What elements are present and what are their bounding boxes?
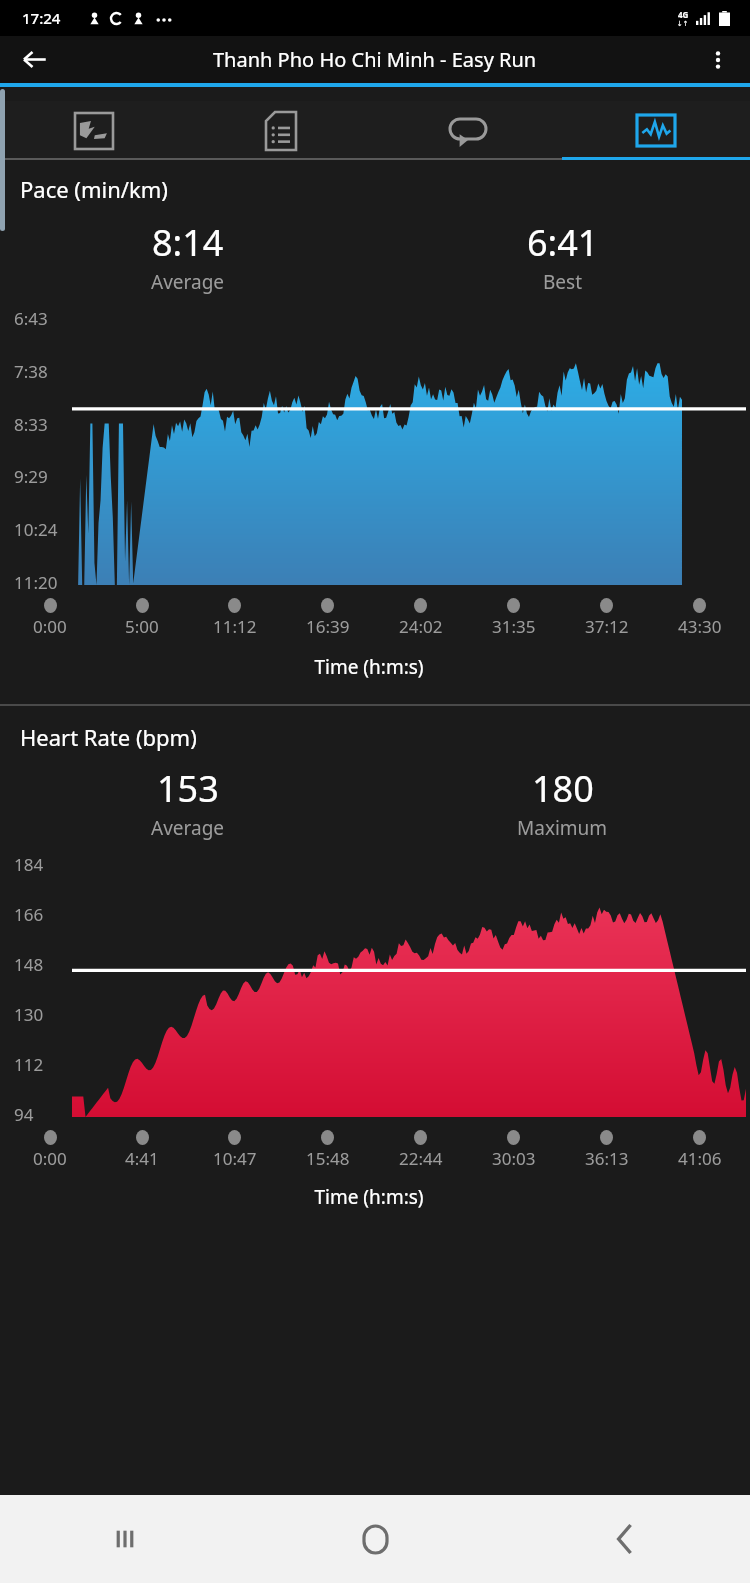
staticText: 10:47 <box>213 1147 257 1170</box>
staticText: Maximum <box>517 815 608 841</box>
staticText: 94 <box>14 1103 34 1126</box>
staticText: 36:13 <box>585 1147 629 1170</box>
staticText: 166 <box>14 903 44 926</box>
staticText: 30:03 <box>492 1147 536 1170</box>
staticText: 24:02 <box>399 615 443 638</box>
staticText: 16:39 <box>306 615 350 638</box>
staticText: 15:48 <box>306 1147 350 1170</box>
staticText: 43:30 <box>678 615 722 638</box>
staticText: 8:14 <box>152 218 224 267</box>
staticText: 4G <box>678 9 689 20</box>
staticText: Pace (min/km) <box>20 174 168 204</box>
button[interactable]: Recent apps <box>0 1495 250 1583</box>
staticText: Best <box>543 269 583 295</box>
staticText: Average <box>151 815 225 841</box>
staticText: 6:43 <box>14 307 48 330</box>
staticText: 22:44 <box>399 1147 443 1170</box>
staticText: ↓↑ <box>677 20 689 28</box>
staticText: 9:29 <box>14 465 48 488</box>
staticText: 7:38 <box>14 360 48 383</box>
staticText: 153 <box>157 764 219 813</box>
staticText: 184 <box>14 853 44 876</box>
staticText: 11:12 <box>213 615 257 638</box>
staticText: 130 <box>14 1003 44 1026</box>
staticText: 37:12 <box>585 615 629 638</box>
staticText: 0:00 <box>33 1147 67 1170</box>
staticText: 180 <box>532 764 594 813</box>
button[interactable]: More options <box>694 36 742 83</box>
staticText: Thanh Pho Ho Chi Minh - Easy Run <box>213 46 537 73</box>
button[interactable]: Details <box>187 101 374 160</box>
staticText: 0:00 <box>33 615 67 638</box>
staticText: Average <box>151 269 225 295</box>
staticText: 17:24 <box>22 8 61 28</box>
staticText: Time (h:m:s) <box>0 654 738 680</box>
staticText: 31:35 <box>492 615 536 638</box>
staticText: Time (h:m:s) <box>0 1184 738 1210</box>
staticText: 5:00 <box>125 615 159 638</box>
staticText: Heart Rate (bpm) <box>20 722 197 752</box>
button[interactable]: Back <box>10 36 58 83</box>
button[interactable]: Charts <box>562 101 750 160</box>
staticText: 41:06 <box>678 1147 722 1170</box>
staticText: 4:41 <box>125 1147 159 1170</box>
staticText: 6:41 <box>527 218 599 267</box>
button[interactable]: Back <box>500 1495 750 1583</box>
staticText: 11:20 <box>14 571 58 594</box>
staticText: 148 <box>14 953 44 976</box>
button[interactable]: Home <box>250 1495 500 1583</box>
button[interactable]: Map <box>0 101 187 160</box>
staticText: 8:33 <box>14 413 48 436</box>
staticText: 112 <box>14 1053 44 1076</box>
staticText: 10:24 <box>14 518 58 541</box>
button[interactable]: Laps <box>374 101 562 160</box>
